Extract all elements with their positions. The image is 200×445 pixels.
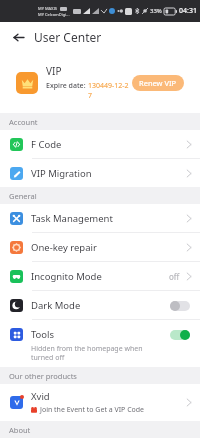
button[interactable]: F Code xyxy=(0,130,200,158)
staticText: Task Management xyxy=(31,212,184,225)
staticText: About xyxy=(9,425,31,435)
button[interactable]: Toggle on xyxy=(169,329,191,340)
staticText: Hidden from the homepage when turned off xyxy=(31,344,143,362)
staticText: User Center xyxy=(34,29,102,45)
staticText: One-key repair xyxy=(31,241,184,254)
staticText: MY CelcomDigi... xyxy=(38,12,70,17)
staticText: Tools xyxy=(31,328,169,341)
button[interactable]: One-key repair xyxy=(0,233,200,261)
button[interactable]: Renew VIP xyxy=(132,75,184,91)
staticText: Our other products xyxy=(9,371,77,381)
button[interactable]: Xvid xyxy=(0,384,200,421)
staticText: Xvid xyxy=(31,390,50,403)
staticText: Dark Mode xyxy=(31,299,169,312)
staticText: Expire date: xyxy=(46,81,88,91)
staticText: F Code xyxy=(31,138,184,151)
staticText: MY MAXIS xyxy=(38,6,58,11)
button[interactable]: Tools xyxy=(0,320,200,367)
button[interactable]: VIP xyxy=(8,57,192,108)
staticText: VIP Migration xyxy=(31,167,184,180)
button[interactable]: Toggle off xyxy=(169,300,191,311)
button[interactable]: Back xyxy=(8,27,28,47)
staticText: 04:31 xyxy=(179,6,197,16)
button[interactable]: VIP Migration xyxy=(0,159,200,187)
staticText: 33% xyxy=(150,7,162,15)
staticText: Account xyxy=(9,117,38,127)
button[interactable]: Task Management xyxy=(0,204,200,232)
staticText: Join the Event to Get a VIP Code xyxy=(40,405,145,415)
staticText: 130449-12-27 xyxy=(88,81,132,101)
staticText: off xyxy=(169,271,180,282)
button[interactable]: Incognito Mode xyxy=(0,262,200,290)
staticText: Incognito Mode xyxy=(31,270,169,283)
staticText: Renew VIP xyxy=(139,78,177,88)
staticText: General xyxy=(9,191,37,201)
button[interactable]: Dark Mode xyxy=(0,291,200,319)
staticText: VIP xyxy=(46,64,62,78)
